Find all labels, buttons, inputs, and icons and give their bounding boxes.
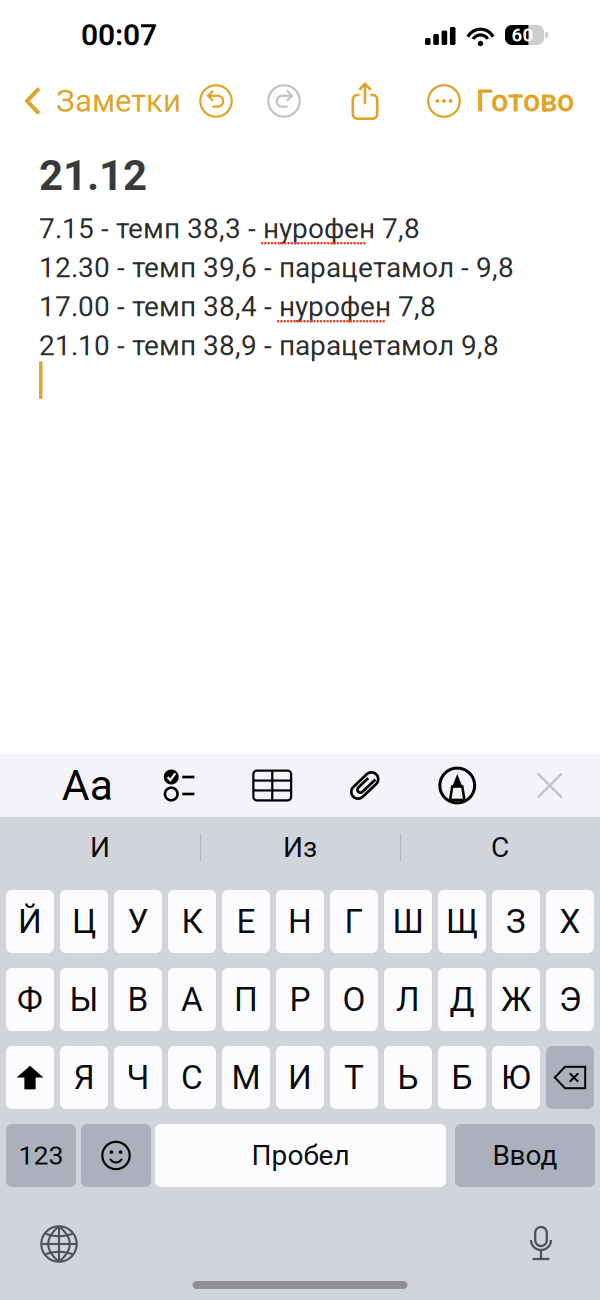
- button[interactable]: Э: [546, 968, 594, 1031]
- staticText: Щ: [446, 902, 478, 941]
- button[interactable]: More: [412, 72, 476, 130]
- button[interactable]: Table: [226, 754, 318, 817]
- button[interactable]: Я: [60, 1046, 108, 1109]
- staticText: 60: [511, 24, 533, 46]
- staticText: Готово: [476, 83, 574, 119]
- button[interactable]: Е: [222, 890, 270, 953]
- button[interactable]: Checklist: [133, 754, 226, 817]
- staticText: З: [506, 902, 526, 941]
- button[interactable]: Ч: [114, 1046, 162, 1109]
- button[interactable]: Пробел: [155, 1124, 446, 1187]
- button[interactable]: В: [114, 968, 162, 1031]
- staticText: А: [181, 980, 203, 1019]
- button[interactable]: Shift: [6, 1046, 54, 1109]
- button[interactable]: Ш: [384, 890, 432, 953]
- button[interactable]: П: [222, 968, 270, 1031]
- button[interactable]: У: [114, 890, 162, 953]
- staticText: 123: [18, 1140, 63, 1171]
- button[interactable]: Из: [200, 817, 400, 878]
- staticText: Заметки: [56, 83, 181, 119]
- button[interactable]: К: [168, 890, 216, 953]
- staticText: Х: [559, 902, 580, 941]
- staticText: Т: [344, 1058, 364, 1097]
- staticText: С: [181, 1058, 203, 1097]
- staticText: П: [234, 980, 258, 1019]
- staticText: Ввод: [492, 1139, 557, 1172]
- button[interactable]: С: [400, 817, 600, 878]
- staticText: Б: [451, 1058, 472, 1097]
- button[interactable]: Ю: [492, 1046, 540, 1109]
- staticText: Aa: [62, 760, 113, 810]
- staticText: Э: [559, 980, 581, 1019]
- staticText: Ш: [392, 902, 423, 941]
- staticText: Л: [396, 980, 420, 1019]
- staticText: Н: [288, 902, 312, 941]
- button[interactable]: Готово: [476, 72, 600, 130]
- staticText: Ю: [501, 1058, 531, 1097]
- button[interactable]: Backspace: [546, 1046, 594, 1109]
- button[interactable]: Х: [546, 890, 594, 953]
- button[interactable]: Ввод: [455, 1124, 595, 1187]
- button[interactable]: Attach: [318, 754, 411, 817]
- staticText: Д: [449, 980, 474, 1019]
- button[interactable]: Markup: [411, 754, 503, 817]
- staticText: О: [342, 980, 365, 1019]
- staticText: Ф: [17, 980, 43, 1019]
- staticText: Г: [344, 902, 363, 941]
- staticText: 21.12: [39, 151, 147, 200]
- button[interactable]: Т: [330, 1046, 378, 1109]
- staticText: Ж: [501, 980, 531, 1019]
- staticText: У: [127, 902, 148, 941]
- button[interactable]: Н: [276, 890, 324, 953]
- staticText: М: [231, 1058, 260, 1097]
- staticText: Ы: [69, 980, 98, 1019]
- button[interactable]: О: [330, 968, 378, 1031]
- button[interactable]: Ь: [384, 1046, 432, 1109]
- staticText: К: [181, 902, 202, 941]
- staticText: Ч: [126, 1058, 149, 1097]
- button[interactable]: Ф: [6, 968, 54, 1031]
- button[interactable]: Ы: [60, 968, 108, 1031]
- staticText: Р: [289, 980, 310, 1019]
- staticText: 17.00 - темп 38,4 - нурофен 7,8: [39, 290, 436, 323]
- button[interactable]: Share: [318, 72, 412, 130]
- staticText: Ц: [72, 902, 96, 941]
- button[interactable]: Б: [438, 1046, 486, 1109]
- button[interactable]: Emoji: [81, 1124, 151, 1187]
- button[interactable]: Undo: [182, 72, 250, 130]
- button[interactable]: Ж: [492, 968, 540, 1031]
- button[interactable]: Redo: [250, 72, 318, 130]
- button[interactable]: Switch keyboard: [30, 1216, 88, 1272]
- staticText: И: [90, 831, 110, 864]
- button[interactable]: Щ: [438, 890, 486, 953]
- button[interactable]: И: [276, 1046, 324, 1109]
- button[interactable]: Close keyboard: [503, 754, 596, 817]
- button[interactable]: Й: [6, 890, 54, 953]
- staticText: Пробел: [251, 1139, 349, 1172]
- button[interactable]: Format: [41, 754, 133, 817]
- staticText: 12.30 - темп 39,6 - парацетамол - 9,8: [39, 251, 514, 284]
- staticText: В: [127, 980, 148, 1019]
- button[interactable]: М: [222, 1046, 270, 1109]
- staticText: С: [491, 831, 509, 864]
- staticText: И: [288, 1058, 312, 1097]
- button[interactable]: И: [0, 817, 200, 878]
- staticText: 00:07: [81, 17, 157, 53]
- staticText: Е: [236, 902, 255, 941]
- button[interactable]: Ц: [60, 890, 108, 953]
- button[interactable]: А: [168, 968, 216, 1031]
- button[interactable]: 123: [6, 1124, 76, 1187]
- button[interactable]: З: [492, 890, 540, 953]
- button[interactable]: Dictate: [512, 1216, 570, 1272]
- button[interactable]: Л: [384, 968, 432, 1031]
- button[interactable]: Г: [330, 890, 378, 953]
- staticText: 21.10 - темп 38,9 - парацетамол 9,8: [39, 329, 499, 362]
- staticText: Из: [283, 831, 317, 864]
- staticText: 7.15 - темп 38,3 - нурофен 7,8: [39, 212, 420, 245]
- button[interactable]: Р: [276, 968, 324, 1031]
- button[interactable]: С: [168, 1046, 216, 1109]
- staticText: Ь: [397, 1058, 418, 1097]
- button[interactable]: Д: [438, 968, 486, 1031]
- staticText: Й: [18, 902, 42, 941]
- button[interactable]: Заметки: [0, 72, 182, 130]
